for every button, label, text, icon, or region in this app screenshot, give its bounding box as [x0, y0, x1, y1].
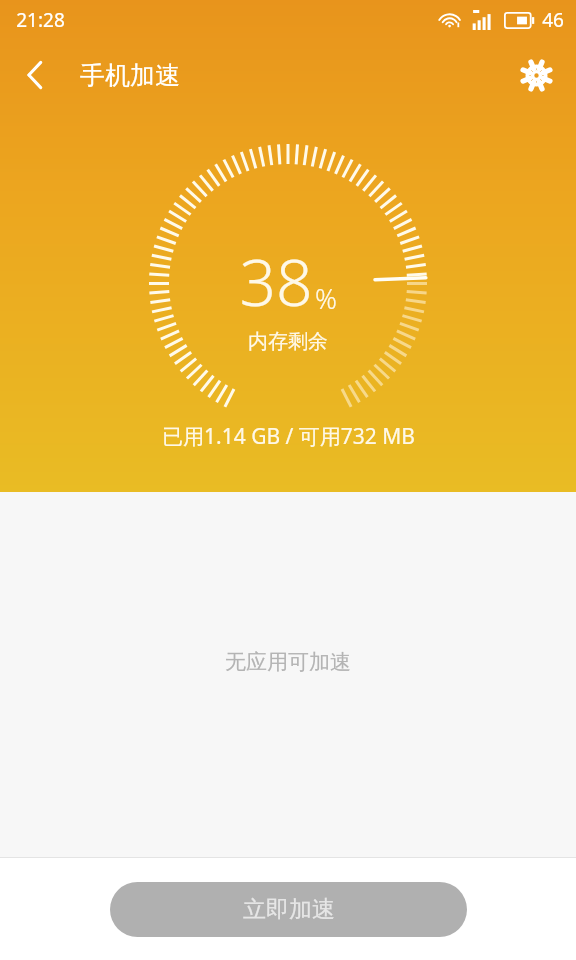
staticText: 38	[239, 238, 313, 325]
button[interactable]: Settings	[513, 52, 560, 99]
button[interactable]: 立即加速	[110, 882, 467, 937]
staticText: 内存剩余	[248, 329, 328, 354]
staticText: 手机加速	[80, 60, 180, 91]
staticText: 已用1.14 GB / 可用732 MB	[162, 422, 415, 451]
staticText: 无应用可加速	[225, 649, 351, 675]
staticText: 立即加速	[243, 895, 335, 924]
staticText: %	[315, 280, 337, 317]
button[interactable]: Back	[14, 52, 56, 98]
staticText: 46	[542, 7, 564, 33]
staticText: 21:28	[16, 7, 65, 33]
